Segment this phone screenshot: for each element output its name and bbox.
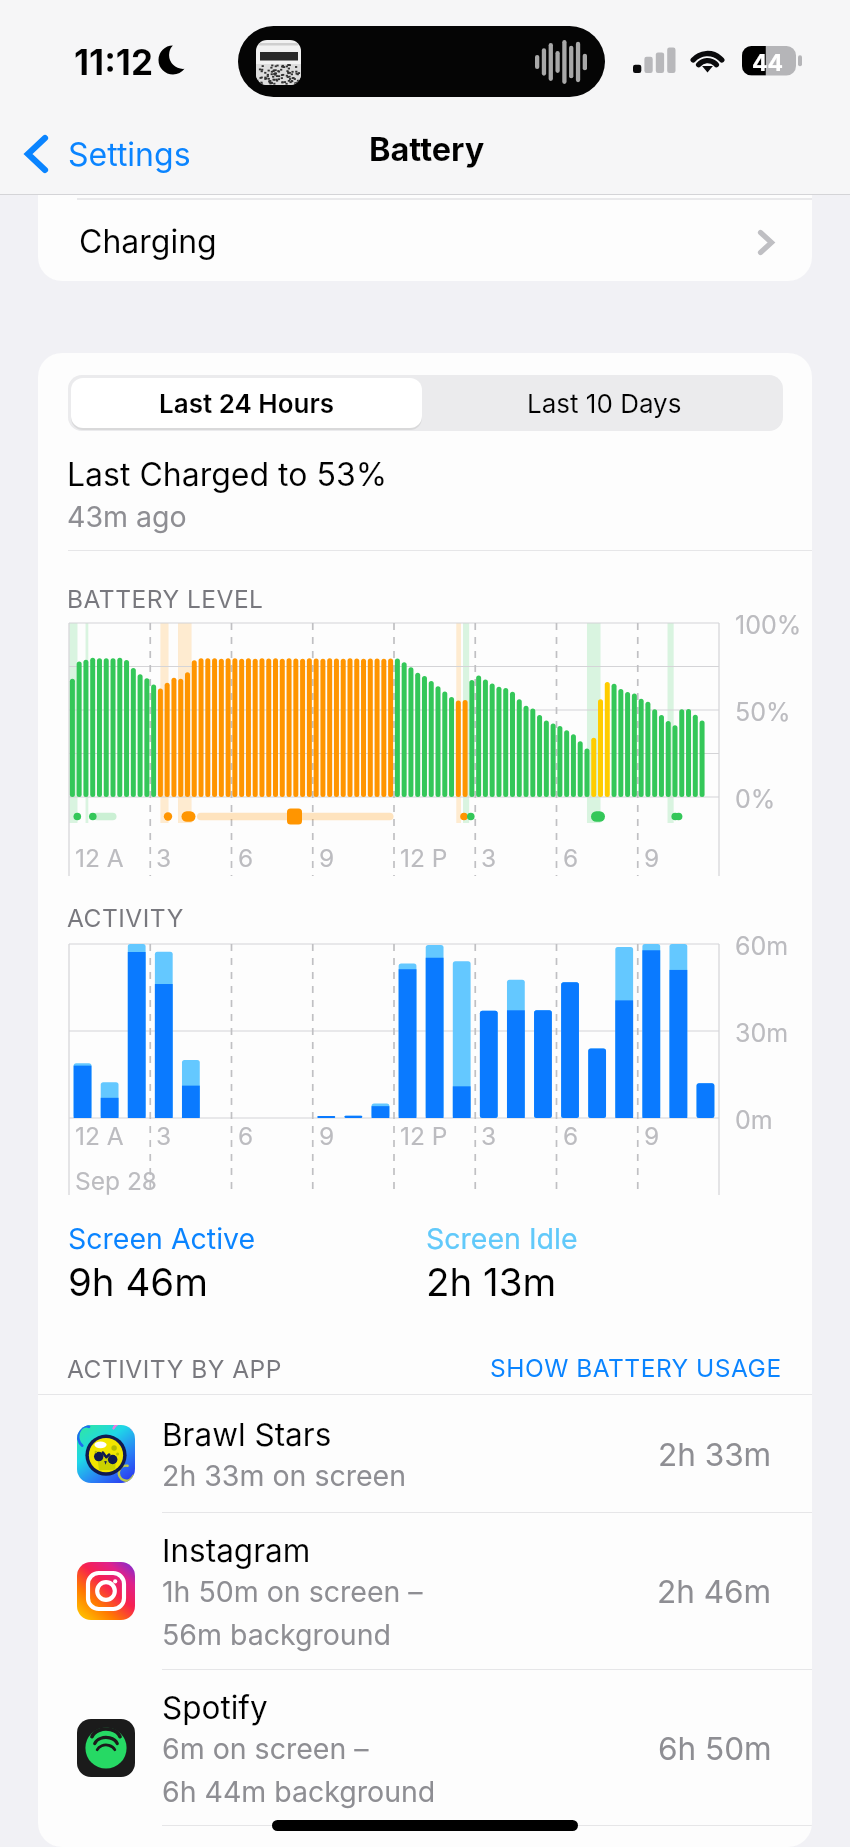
staticText: 3 [481, 843, 497, 873]
staticText: 9 [644, 1121, 660, 1151]
staticText: Settings [68, 135, 191, 174]
staticText: 6 [563, 1121, 579, 1151]
staticText: ACTIVITY BY APP [67, 1354, 282, 1384]
button[interactable]: Charging [38, 195, 812, 281]
staticText: 60m [735, 931, 789, 961]
staticText: 12 P [400, 1121, 448, 1151]
staticText: 2h 13m [426, 1259, 557, 1306]
staticText: 100% [735, 610, 802, 640]
staticText: Screen Idle [426, 1221, 578, 1255]
staticText: 2h 46m [657, 1572, 772, 1610]
staticText: Last Charged to 53% [67, 455, 388, 494]
staticText: Brawl Stars [162, 1415, 332, 1453]
button[interactable]: Brawl Stars [38, 1395, 812, 1512]
staticText: Last 24 Hours [159, 388, 335, 419]
staticText: Sep 28 [75, 1166, 157, 1196]
button[interactable]: Instagram [38, 1513, 812, 1669]
staticText: SHOW BATTERY USAGE [490, 1353, 782, 1383]
staticText: 1h 50m on screen – [162, 1574, 423, 1608]
staticText: Spotify [162, 1688, 268, 1726]
staticText: 44 [752, 49, 784, 77]
staticText: 3 [481, 1121, 497, 1151]
button[interactable]: Spotify [38, 1670, 812, 1825]
staticText: 50% [735, 697, 791, 727]
staticText: 6h 50m [658, 1729, 772, 1767]
staticText: 3 [156, 843, 172, 873]
staticText: 9 [319, 1121, 335, 1151]
staticText: 6 [238, 1121, 254, 1151]
staticText: 30m [735, 1018, 789, 1048]
staticText: 12 A [75, 1121, 124, 1151]
staticText: Last 10 Days [527, 388, 682, 419]
staticText: 3 [156, 1121, 172, 1151]
staticText: Screen Active [68, 1221, 256, 1255]
staticText: BATTERY LEVEL [67, 584, 264, 614]
staticText: 9 [644, 843, 660, 873]
staticText: 2h 33m [658, 1435, 772, 1473]
staticText: 6m on screen – [162, 1731, 369, 1765]
staticText: 43m ago [67, 499, 187, 533]
staticText: 6 [238, 843, 254, 873]
button[interactable]: Last 24 Hours [71, 378, 422, 428]
staticText: 9h 46m [68, 1259, 208, 1306]
button[interactable]: Back to Settings [0, 128, 203, 180]
staticText: 0m [735, 1105, 773, 1135]
staticText: 9 [319, 843, 335, 873]
staticText: Battery [369, 130, 485, 169]
staticText: 0% [735, 784, 776, 814]
button[interactable]: Last 10 Days [425, 375, 783, 431]
button[interactable]: SHOW BATTERY USAGE [490, 1353, 782, 1383]
staticText: 2h 33m on screen [162, 1458, 407, 1492]
staticText: 12 A [75, 843, 124, 873]
staticText: Instagram [162, 1531, 311, 1569]
staticText: Charging [79, 222, 217, 261]
staticText: 11:12 [74, 41, 154, 83]
staticText: 56m background [162, 1617, 391, 1651]
staticText: 6 [563, 843, 579, 873]
staticText: 6h 44m background [162, 1774, 436, 1808]
staticText: ACTIVITY [67, 903, 184, 933]
staticText: 12 P [400, 843, 448, 873]
